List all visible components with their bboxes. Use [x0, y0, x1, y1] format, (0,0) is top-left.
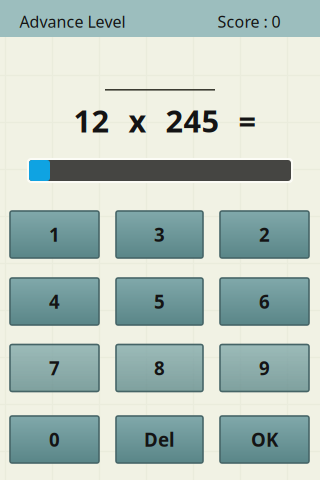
staticText: =	[238, 100, 256, 141]
button[interactable]: Del	[116, 416, 203, 463]
staticText: Score : 0	[217, 11, 280, 32]
staticText: 1	[49, 222, 60, 247]
button[interactable]: 1	[10, 211, 99, 258]
staticText: 0	[49, 427, 60, 452]
button[interactable]: 2	[220, 211, 309, 258]
button[interactable]: 9	[220, 344, 309, 391]
staticText: 12	[73, 100, 109, 141]
button[interactable]: 8	[116, 344, 203, 391]
staticText: x	[128, 100, 146, 141]
button[interactable]: 3	[116, 211, 203, 258]
staticText: OK	[251, 427, 278, 452]
staticText: 9	[259, 356, 270, 380]
button[interactable]: 0	[10, 416, 99, 463]
button[interactable]: 7	[10, 344, 99, 391]
staticText: 8	[154, 356, 165, 380]
staticText: 6	[259, 289, 270, 314]
staticText: Del	[144, 427, 175, 452]
staticText: 245	[165, 100, 219, 141]
button[interactable]: 6	[220, 278, 309, 325]
staticText: 4	[49, 289, 60, 314]
button[interactable]: 5	[116, 278, 203, 325]
button[interactable]: OK	[220, 416, 309, 463]
staticText: 2	[259, 222, 270, 247]
staticText: 5	[154, 289, 165, 314]
button[interactable]: 4	[10, 278, 99, 325]
staticText: Advance Level	[19, 11, 125, 32]
staticText: 7	[49, 356, 60, 380]
staticText: 3	[154, 222, 165, 247]
